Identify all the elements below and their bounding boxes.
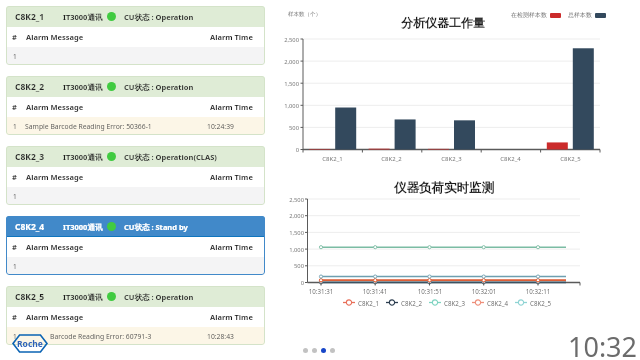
staticText: 10:31:31 (302, 287, 340, 295)
button[interactable] (312, 348, 317, 353)
button[interactable]: C8K2_3 (6, 146, 265, 205)
staticText: # (12, 172, 17, 182)
staticText: 1 (13, 52, 17, 61)
staticText: 1,000 (286, 246, 304, 254)
staticText: C8K2_2 (401, 299, 423, 307)
staticText: C8K2_2 (362, 155, 421, 163)
staticText: 1,500 (281, 80, 299, 88)
staticText: IT3000通讯 (63, 152, 103, 162)
staticText: 10:32:01 (465, 287, 503, 295)
staticText: 分析仪器工作量 (401, 15, 485, 30)
staticText: C8K2_5 (530, 299, 552, 307)
staticText: # (12, 102, 17, 112)
staticText: 仪器负荷实时监测 (394, 180, 494, 196)
staticText: C8K2_3 (444, 299, 466, 307)
staticText: 1 (13, 262, 17, 271)
staticText: IT3000通讯 (63, 222, 103, 232)
staticText: 1,000 (281, 102, 299, 110)
staticText: Alarm Time (210, 32, 253, 42)
staticText: 10:32 (568, 328, 638, 360)
staticText: IT3000通讯 (63, 82, 103, 92)
staticText: IT3000通讯 (63, 292, 103, 302)
staticText: 1 (13, 192, 17, 201)
button[interactable]: C8K2_4 (472, 298, 509, 307)
staticText: Alarm Time (210, 172, 253, 182)
staticText: Alarm Message (26, 102, 84, 112)
staticText: # (12, 242, 17, 252)
staticText: Barcode Reading Error: 60791-3 (50, 332, 152, 341)
staticText: Alarm Message (26, 312, 84, 322)
staticText: Alarm Time (210, 102, 253, 112)
staticText: Alarm Time (210, 242, 253, 252)
staticText: Sample Barcode Reading Error: 50366-1 (25, 122, 152, 131)
staticText: C8K2_5 (15, 291, 45, 303)
staticText: CU状态 : Operation (124, 12, 194, 22)
button[interactable] (330, 348, 335, 353)
staticText: CU状态 : Operation(CLAS) (124, 152, 217, 162)
staticText: 10:32:11 (519, 287, 557, 295)
staticText: C8K2_4 (487, 299, 509, 307)
staticText: C8K2_4 (481, 155, 540, 163)
staticText: C8K2_1 (358, 299, 380, 307)
button[interactable]: C8K2_4 (6, 216, 265, 275)
staticText: Alarm Message (26, 172, 84, 182)
staticText: Alarm Message (26, 242, 84, 252)
staticText: Alarm Time (210, 312, 253, 322)
button[interactable]: C8K2_2 (386, 298, 423, 307)
button[interactable]: C8K2_2 (6, 76, 265, 135)
staticText: CU状态 : Operation (124, 292, 194, 302)
staticText: 0 (286, 279, 304, 287)
staticText: C8K2_3 (15, 151, 45, 163)
button[interactable]: C8K2_1 (6, 6, 265, 65)
button[interactable]: C8K2_3 (429, 298, 466, 307)
button[interactable] (321, 348, 326, 353)
button[interactable]: C8K2_1 (343, 298, 380, 307)
staticText: 1,500 (286, 229, 304, 237)
staticText: 样本数（个） (288, 11, 321, 18)
button[interactable]: 在检测样本数 (511, 11, 606, 19)
staticText: CU状态 : Operation (124, 82, 194, 92)
button[interactable]: C8K2_5 (515, 298, 552, 307)
staticText: CU状态 : Stand by (124, 222, 188, 232)
staticText: 2,000 (281, 58, 299, 66)
staticText: 在检测样本数 (511, 11, 547, 19)
staticText: C8K2_2 (15, 81, 45, 93)
staticText: 500 (281, 124, 299, 132)
staticText: C8K2_1 (15, 11, 45, 23)
staticText: C8K2_4 (15, 221, 45, 233)
staticText: 总样本数 (568, 11, 592, 19)
staticText: Roche (17, 338, 43, 350)
staticText: C8K2_5 (541, 155, 600, 163)
staticText: 1 (13, 332, 17, 341)
staticText: 2,500 (286, 196, 304, 204)
button[interactable]: C8K2_5 (6, 286, 265, 345)
staticText: 500 (286, 262, 304, 270)
staticText: 10:24:39 (207, 122, 234, 131)
staticText: 2,000 (286, 212, 304, 220)
staticText: # (12, 32, 17, 42)
staticText: 1 (13, 122, 17, 131)
staticText: 10:31:41 (356, 287, 394, 295)
staticText: 10:31:51 (411, 287, 449, 295)
staticText: C8K2_1 (303, 155, 362, 163)
staticText: 0 (281, 146, 299, 154)
staticText: 10:28:43 (207, 332, 234, 341)
staticText: # (12, 312, 17, 322)
button[interactable]: Roche (12, 334, 48, 353)
staticText: IT3000通讯 (63, 12, 103, 22)
staticText: Alarm Message (26, 32, 84, 42)
staticText: C8K2_3 (422, 155, 481, 163)
staticText: 2,500 (281, 36, 299, 44)
button[interactable] (303, 348, 308, 353)
